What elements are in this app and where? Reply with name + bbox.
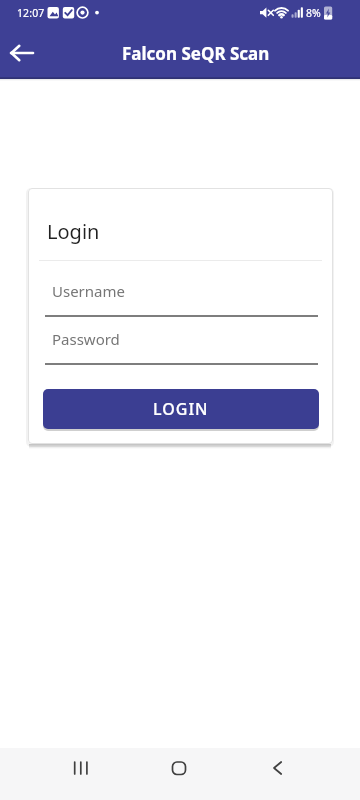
button[interactable]: Password <box>45 319 318 365</box>
button[interactable] <box>62 756 100 784</box>
button[interactable]: LOGIN <box>43 389 319 429</box>
staticText: Falcon SeQR Scan <box>122 42 270 65</box>
button[interactable] <box>2 38 42 68</box>
staticText: 8% <box>306 6 321 20</box>
staticText: Username <box>52 281 125 301</box>
staticText: 12:07 <box>17 6 45 20</box>
button[interactable] <box>160 756 198 784</box>
button[interactable] <box>258 756 296 784</box>
staticText: Password <box>52 329 120 349</box>
staticText: Login <box>47 218 100 245</box>
button[interactable]: Username <box>45 271 318 317</box>
staticText: LOGIN <box>153 398 209 420</box>
